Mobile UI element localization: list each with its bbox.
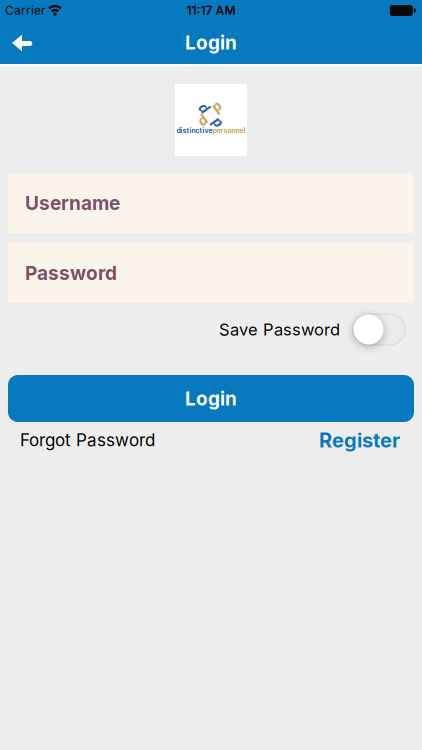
staticText: Login bbox=[185, 31, 237, 54]
staticText: Register bbox=[319, 428, 400, 452]
staticText: p bbox=[199, 113, 208, 130]
staticText: p bbox=[213, 113, 222, 130]
staticText: Login bbox=[185, 387, 237, 410]
staticText: Username bbox=[25, 191, 120, 214]
staticText: 11:17 AM bbox=[186, 3, 235, 18]
staticText: d bbox=[213, 99, 222, 116]
staticText: d bbox=[199, 99, 208, 116]
staticText: Carrier bbox=[5, 3, 46, 18]
staticText: personnel bbox=[212, 126, 245, 135]
staticText: distinctive bbox=[176, 126, 212, 135]
staticText: Password bbox=[25, 261, 117, 284]
staticText: Save Password bbox=[219, 319, 340, 339]
staticText: Forgot Password bbox=[20, 430, 155, 450]
